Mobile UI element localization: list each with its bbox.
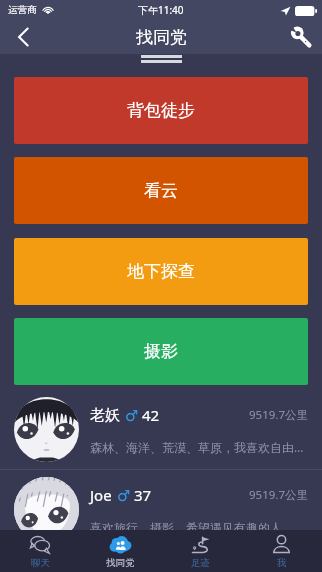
staticText: 老妖 <box>90 406 120 425</box>
staticText: 森林、海洋、荒漠、草原，我喜欢自由… <box>90 439 304 455</box>
staticText: 下午11:40 <box>138 3 184 17</box>
button[interactable]: 背包徒步 <box>14 77 308 144</box>
button[interactable]: 看云 <box>14 157 308 224</box>
staticText: ♂ <box>125 407 139 424</box>
staticText: ♂ <box>117 487 131 504</box>
staticText: 9519.7公里 <box>249 487 308 503</box>
staticText: 9519.7公里 <box>249 407 308 423</box>
button[interactable]: 摄影 <box>14 318 308 385</box>
staticText: 运营商 <box>8 4 37 16</box>
staticText: Joe <box>90 485 112 505</box>
button[interactable]: Joe <box>0 470 322 550</box>
staticText: 我 <box>277 557 287 569</box>
staticText: 摄影 <box>144 341 178 362</box>
staticText: 看云 <box>144 180 178 201</box>
button[interactable]: 我 <box>241 530 322 572</box>
button[interactable]: 足迹 <box>160 530 241 572</box>
staticText: 背包徒步 <box>127 100 195 121</box>
button[interactable]: 聊天 <box>0 530 80 572</box>
staticText: 聊天 <box>31 557 50 569</box>
staticText: 37 <box>134 485 152 505</box>
button[interactable]: 老妖 <box>0 390 322 470</box>
button[interactable]: Settings <box>284 20 318 54</box>
staticText: 喜欢旅行、摄影，希望遇见有趣的人… <box>90 519 292 535</box>
staticText: 地下探查 <box>127 261 195 282</box>
staticText: 42 <box>142 405 160 425</box>
button[interactable]: 找同党 <box>80 530 160 572</box>
button[interactable]: Back <box>6 20 40 54</box>
staticText: 找同党 <box>136 27 187 48</box>
button[interactable]: 地下探查 <box>14 238 308 305</box>
staticText: 找同党 <box>106 557 135 569</box>
staticText: 足迹 <box>191 557 210 569</box>
